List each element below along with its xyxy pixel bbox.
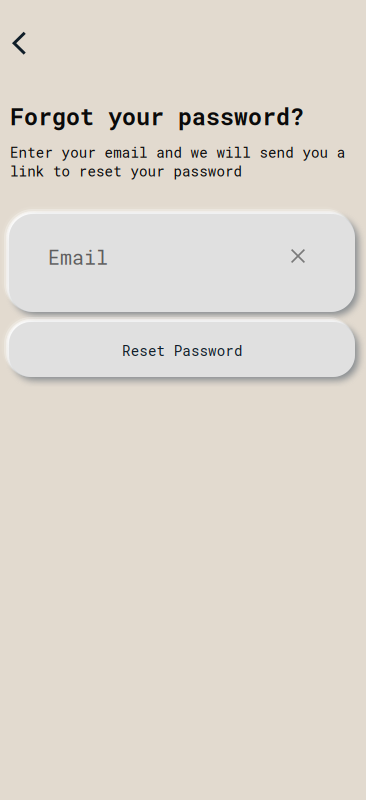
staticText: Enter your email and we will send you a … [10, 143, 345, 180]
staticText: Forgot your password? [10, 101, 304, 132]
button[interactable]: Reset Password [9, 322, 355, 377]
button[interactable]: Back [0, 21, 41, 65]
staticText: Reset Password [122, 341, 242, 360]
button[interactable]: Clear email [281, 240, 315, 274]
staticText: Email [48, 244, 108, 270]
